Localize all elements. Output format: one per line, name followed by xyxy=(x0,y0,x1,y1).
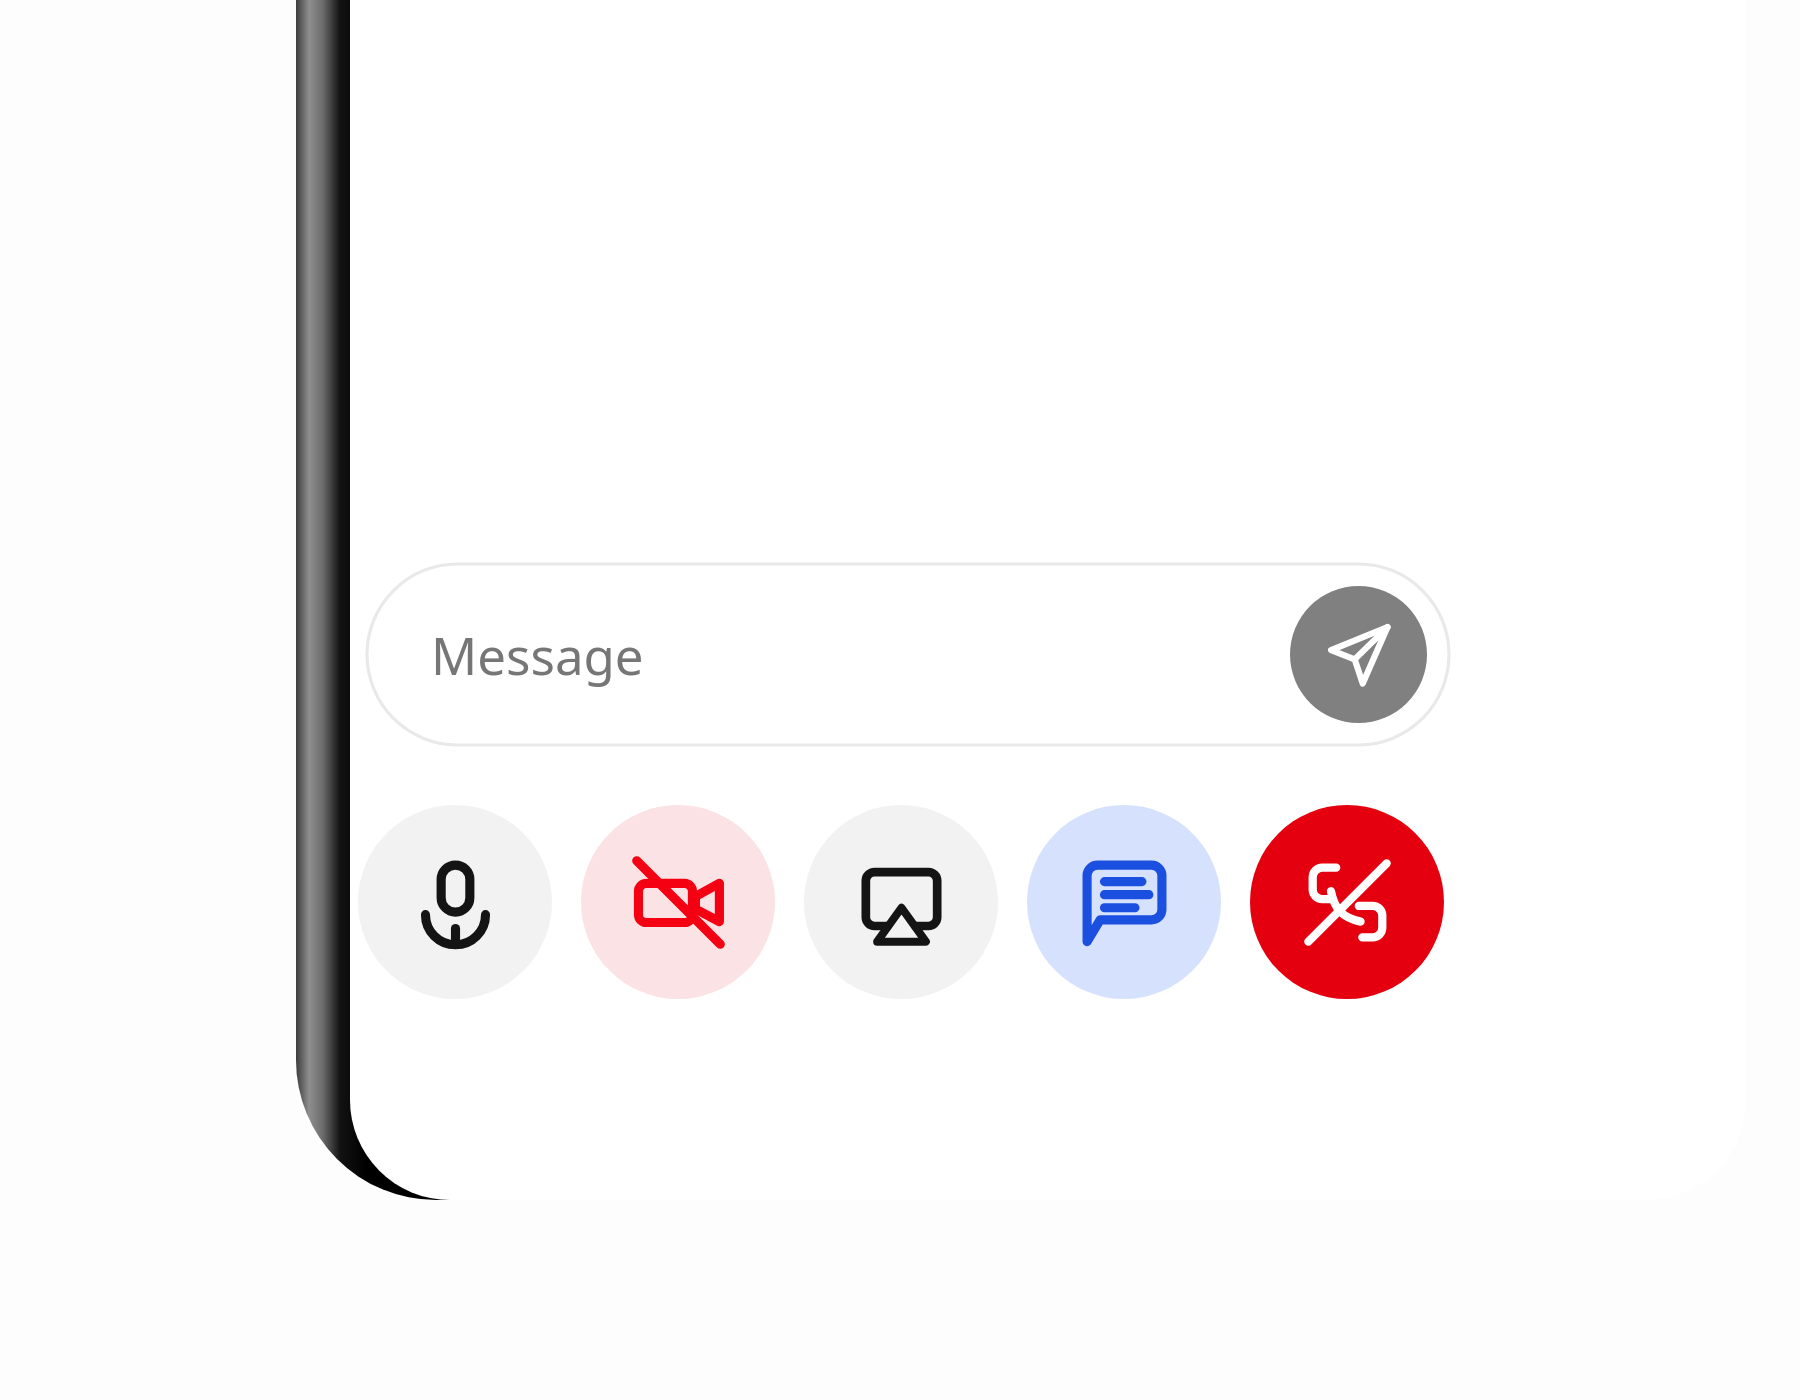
button[interactable]: Chat xyxy=(1027,805,1221,999)
button[interactable]: End call xyxy=(1250,805,1444,999)
button[interactable]: Message xyxy=(365,562,1451,747)
button[interactable]: Mute microphone xyxy=(358,805,552,999)
button[interactable]: Turn camera on xyxy=(581,805,775,999)
button[interactable]: Cast screen xyxy=(804,805,998,999)
staticText: Message xyxy=(431,620,644,689)
button[interactable]: Send message xyxy=(1290,586,1427,723)
